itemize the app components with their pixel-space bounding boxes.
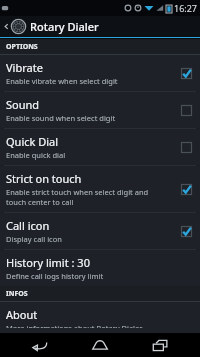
staticText: Define call logs history limit [6,271,104,281]
button[interactable]: Back [0,16,200,37]
button[interactable]: Checked [178,223,194,239]
staticText: INFOS [6,289,28,299]
staticText: Enable sound when select digit [6,113,116,123]
button[interactable]: About [0,302,200,333]
staticText: History limit : 30 [6,255,90,270]
button[interactable]: Back [20,333,60,357]
button[interactable]: Vibrate [0,55,200,91]
staticText: Vibrate [6,60,43,75]
staticText: Enable vibrate when select digit [6,76,118,86]
button[interactable]: Checked [178,181,194,197]
button[interactable]: Checked [178,65,194,81]
staticText: Sound [6,97,40,112]
other: Back [3,23,10,30]
staticText: Quick Dial [6,134,59,149]
button[interactable]: Unchecked [178,102,194,118]
button[interactable]: Quick Dial [0,129,200,165]
button[interactable]: Call icon [0,213,200,249]
staticText: Rotary Dialer [30,19,99,34]
button[interactable]: History limit : 30 [0,250,200,286]
staticText: About [6,307,38,322]
staticText: More informations about Rotary Dialer [6,323,143,328]
staticText: Display call icon [6,234,62,244]
staticText: Call icon [6,218,50,233]
staticText: 16:27 [174,2,198,14]
staticText: Enable quick dial [6,150,66,160]
staticText: Strict on touch [6,171,82,186]
button[interactable]: Home [80,333,120,357]
button[interactable]: Strict on touch [0,166,200,212]
staticText: Enable strict touch when select digit an… [6,187,149,197]
staticText: OPTIONS [6,42,38,52]
button[interactable]: Recent apps [140,333,180,357]
button[interactable]: Unchecked [178,139,194,155]
button[interactable]: Sound [0,92,200,128]
staticText: touch center to call [6,197,74,207]
